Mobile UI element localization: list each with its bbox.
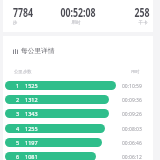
staticText: 1312 — [25, 96, 38, 103]
staticText: 步数 — [23, 69, 32, 74]
staticText: 00:06:12 — [122, 154, 142, 160]
staticText: 7784 — [0, 4, 52, 20]
staticText: 00:52:08 — [49, 4, 107, 20]
staticText: 00:08:03 — [122, 126, 142, 133]
staticText: 1525 — [25, 82, 38, 89]
button[interactable]: 3 — [0, 109, 160, 118]
button[interactable]: 5 — [0, 138, 160, 147]
staticText: 5 — [16, 139, 20, 146]
staticText: 1 — [16, 82, 20, 89]
staticText: 00:09:26 — [122, 111, 142, 118]
staticText: 1197 — [25, 139, 38, 146]
staticText: 步 — [0, 20, 35, 26]
staticText: 258 — [113, 4, 160, 20]
staticText: 1081 — [25, 153, 38, 160]
staticText: 00:06:46 — [122, 140, 142, 147]
staticText: 千卡 — [123, 20, 160, 26]
button[interactable]: 2 — [0, 95, 160, 104]
staticText: 4 — [16, 125, 20, 132]
button[interactable]: 4 — [0, 124, 160, 133]
staticText: 公里 — [14, 69, 23, 74]
staticText: 3 — [16, 110, 20, 117]
staticText: 用时 — [56, 20, 96, 26]
staticText: 1255 — [25, 125, 38, 132]
button[interactable]: 1 — [0, 81, 160, 90]
button[interactable]: 每公里详情 — [13, 45, 55, 57]
staticText: 2 — [16, 96, 20, 103]
staticText: 用时 — [131, 69, 140, 74]
staticText: 00:09:36 — [122, 97, 142, 104]
staticText: 1343 — [25, 110, 38, 117]
staticText: 6 — [16, 153, 20, 160]
staticText: 每公里详情 — [21, 47, 55, 55]
button[interactable]: 6 — [0, 152, 160, 160]
staticText: 00:10:59 — [122, 83, 142, 90]
